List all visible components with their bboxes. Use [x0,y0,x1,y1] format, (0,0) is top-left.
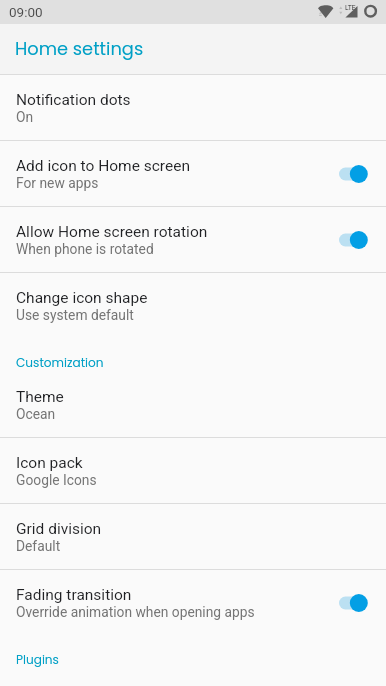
staticText: Override animation when opening apps [16,604,255,620]
staticText: Icon pack [16,454,83,472]
staticText: When phone is rotated [16,241,154,257]
button[interactable]: Theme [0,372,386,438]
button[interactable]: Grid division [0,504,386,570]
button[interactable]: Allow Home screen rotation [0,207,386,273]
staticText: Home settings [15,36,144,61]
button[interactable]: Fading transition [0,570,386,636]
staticText: 09:00 [9,4,43,20]
staticText: LTE [345,4,356,12]
staticText: Fading transition [16,586,132,604]
staticText: Ocean [16,406,56,422]
staticText: On [16,109,34,125]
staticText: For new apps [16,175,99,191]
button[interactable]: Add icon to Home screen [0,141,386,207]
staticText: Notification dots [16,91,131,109]
staticText: Google Icons [16,472,97,488]
staticText: Add icon to Home screen [16,157,190,175]
other: Status icons [318,0,378,24]
staticText: Grid division [16,520,102,538]
button[interactable]: Change icon shape [0,273,386,339]
staticText: Allow Home screen rotation [16,223,208,241]
button[interactable]: Notification dots [0,75,386,141]
staticText: Default [16,538,61,554]
staticText: Theme [16,388,64,406]
button[interactable]: Icon pack [0,438,386,504]
staticText: Change icon shape [16,289,148,307]
staticText: Customization [16,354,104,371]
staticText: Use system default [16,307,134,323]
staticText: Plugins [16,651,59,668]
